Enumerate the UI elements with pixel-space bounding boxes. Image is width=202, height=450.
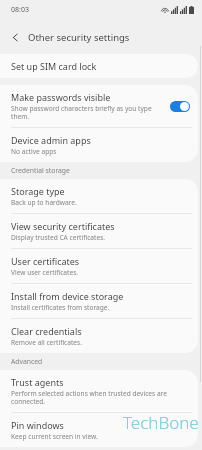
staticText: 08:03: [11, 5, 29, 15]
staticText: Storage type: [11, 185, 65, 197]
staticText: Perform selected actions when trusted de…: [11, 389, 190, 406]
button[interactable]: User certificates: [0, 249, 198, 283]
button[interactable]: Trust agents: [0, 370, 198, 412]
button[interactable]: Set up SIM card lock: [0, 54, 198, 78]
staticText: Show password characters briefly as you …: [11, 104, 166, 121]
staticText: TechBone: [123, 411, 199, 434]
button[interactable]: View security certificates: [0, 214, 198, 248]
staticText: Credential storage: [11, 166, 70, 175]
button[interactable]: Back: [6, 28, 24, 46]
button[interactable]: Install from device storage: [0, 284, 198, 318]
button[interactable]: Storage type: [0, 179, 198, 213]
staticText: Make passwords visible: [11, 91, 111, 103]
staticText: Device admin apps: [11, 134, 91, 146]
staticText: Set up SIM card lock: [11, 60, 97, 72]
staticText: Keep current screen in view.: [11, 432, 98, 441]
staticText: Install certificates from storage.: [11, 303, 110, 312]
staticText: Back up to hardware.: [11, 198, 77, 207]
staticText: No active apps: [11, 147, 57, 156]
staticText: Advanced: [11, 357, 43, 366]
staticText: Install from device storage: [11, 290, 124, 302]
staticText: Display trusted CA certificates.: [11, 233, 106, 242]
staticText: Pin windows: [11, 419, 64, 431]
staticText: Remove all certificates.: [11, 338, 82, 347]
button[interactable]: Make passwords visible: [0, 85, 198, 127]
staticText: View security certificates: [11, 220, 115, 232]
staticText: Clear credentials: [11, 325, 82, 337]
button[interactable]: Make passwords visible toggle: [170, 101, 190, 112]
button[interactable]: Clear credentials: [0, 319, 198, 353]
button[interactable]: Device admin apps: [0, 128, 198, 162]
button[interactable]: Pin windows: [0, 413, 198, 447]
staticText: Trust agents: [11, 376, 64, 388]
staticText: Other security settings: [28, 31, 130, 44]
staticText: User certificates: [11, 255, 80, 267]
staticText: View user certificates.: [11, 268, 79, 277]
